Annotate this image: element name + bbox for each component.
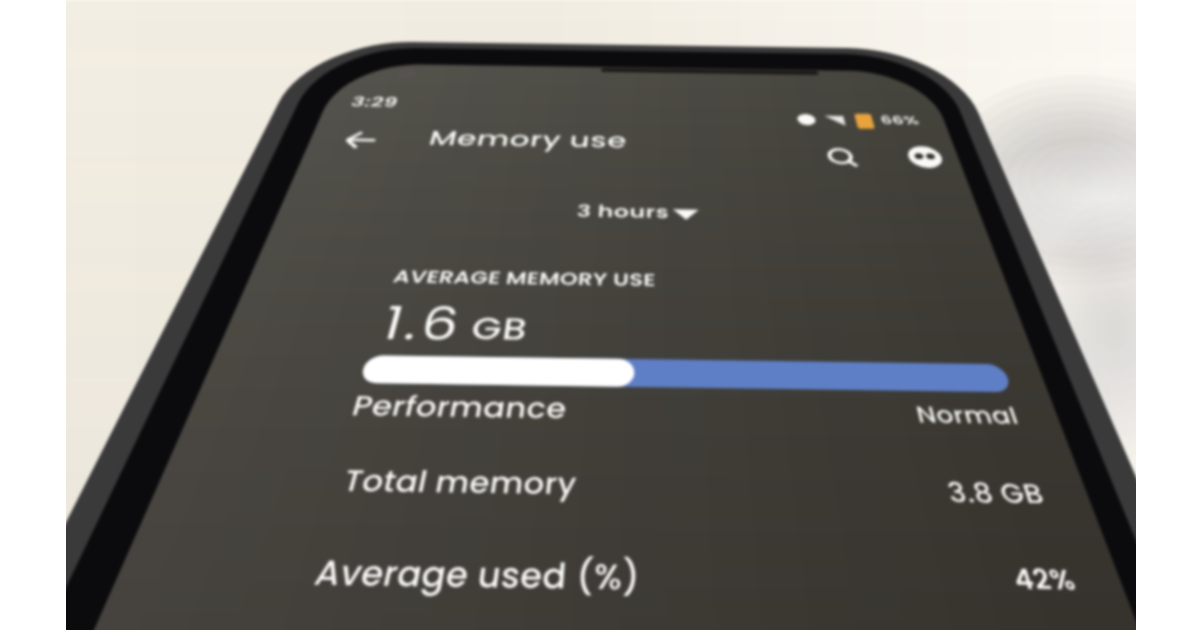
button[interactable]: Navigate up	[332, 112, 394, 170]
button[interactable]: Total memory 3.8 GB	[300, 446, 1060, 524]
button[interactable]: Account	[894, 130, 958, 188]
button[interactable]: Average used 42%	[278, 544, 1084, 630]
button[interactable]: 3 hours	[556, 186, 720, 244]
button[interactable]: Search	[812, 130, 876, 188]
